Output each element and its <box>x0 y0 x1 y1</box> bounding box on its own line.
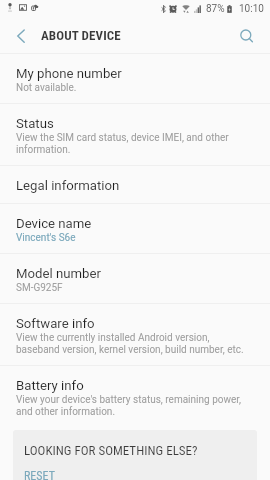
button[interactable]: Model number <box>0 254 270 303</box>
staticText: Model number <box>16 265 101 281</box>
button[interactable]: My phone number <box>0 54 270 103</box>
staticText: Not available. <box>16 81 77 93</box>
staticText: View the currently installed Android ver… <box>16 331 210 343</box>
button[interactable]: LOOKING FOR SOMETHING ELSE? <box>13 430 257 480</box>
staticText: Status <box>16 115 54 131</box>
button[interactable]: Search <box>234 22 262 50</box>
button[interactable]: Battery info <box>0 366 270 427</box>
staticText: ABOUT DEVICE <box>41 28 121 43</box>
button[interactable]: Status <box>0 104 270 165</box>
staticText: baseband version, kernel version, build … <box>16 343 244 355</box>
staticText: Device name <box>16 215 92 231</box>
button[interactable]: Legal information <box>0 166 270 203</box>
staticText: View your device's battery status, remai… <box>16 393 242 405</box>
staticText: My phone number <box>16 65 122 81</box>
staticText: Legal information <box>16 177 120 193</box>
staticText: LOOKING FOR SOMETHING ELSE? <box>24 444 198 458</box>
button[interactable]: Software info <box>0 304 270 365</box>
staticText: Battery info <box>16 377 84 393</box>
staticText: information. <box>16 143 71 155</box>
staticText: and other information. <box>16 405 116 417</box>
button[interactable]: Device name <box>0 204 270 253</box>
staticText: Vincent's S6e <box>16 231 76 243</box>
staticText: SM-G925F <box>16 281 63 293</box>
staticText: Software info <box>16 315 95 331</box>
staticText: 87% <box>206 3 225 15</box>
button[interactable]: Navigate up <box>7 22 35 50</box>
staticText: RESET <box>24 469 55 480</box>
staticText: 10:10 <box>239 3 264 15</box>
staticText: View the SIM card status, device IMEI, a… <box>16 131 229 143</box>
